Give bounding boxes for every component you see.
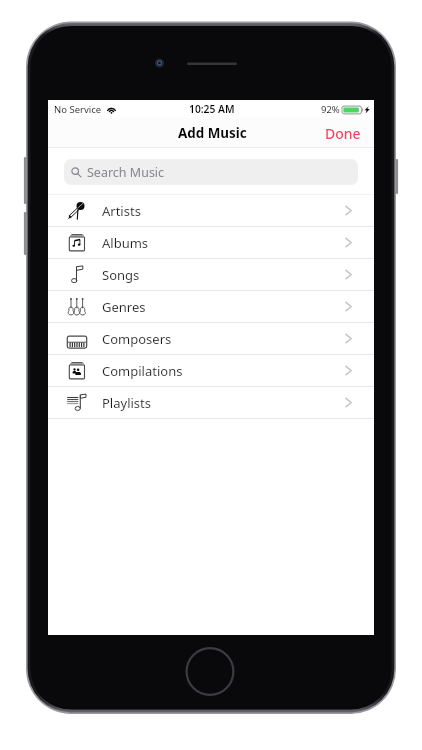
staticText: Artists [102,202,141,220]
staticText: No Service [54,103,102,116]
staticText: Done [325,124,361,143]
staticText: Search Music [87,164,165,181]
button[interactable]: Compilations [48,355,374,387]
button[interactable]: Songs [48,259,374,291]
button[interactable]: Composers [48,323,374,355]
staticText: Playlists [102,394,151,412]
staticText: Add Music [178,124,247,142]
button[interactable]: Artists [48,195,374,227]
button[interactable]: Genres [48,291,374,323]
button[interactable]: Playlists [48,387,374,419]
staticText: Compilations [102,362,183,380]
staticText: 92% [321,103,340,116]
staticText: Songs [102,266,140,284]
button[interactable]: Albums [48,227,374,259]
staticText: 10:25 AM [189,102,235,116]
staticText: Albums [102,234,149,252]
staticText: Composers [102,330,172,348]
staticText: Genres [102,298,146,316]
button[interactable]: Done [312,119,374,148]
button[interactable]: Search Music [64,159,358,185]
